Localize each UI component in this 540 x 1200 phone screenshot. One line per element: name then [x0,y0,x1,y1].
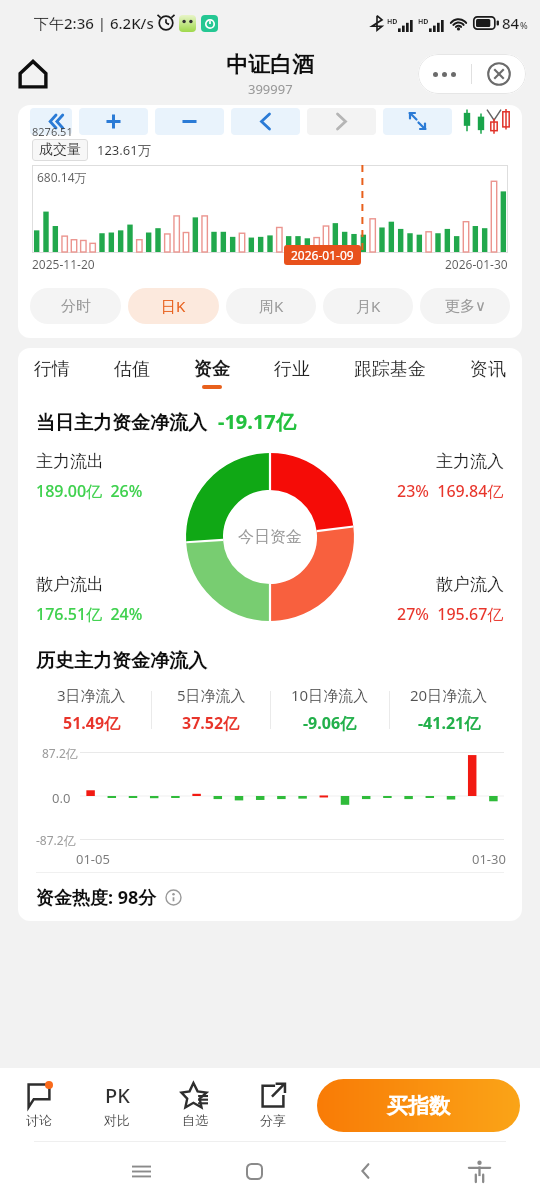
staticText: 对比 [104,1112,130,1128]
staticText: 3日净流入 [57,685,126,705]
staticText: 当日主力资金净流入 [36,411,207,435]
staticText: 399997 [248,80,293,98]
staticText: 主力流入 [436,451,504,472]
staticText: HD [418,17,429,27]
button[interactable]: Back [345,1150,387,1192]
button[interactable]: 更多∨ [420,288,510,324]
staticText: 行业 [274,358,310,381]
staticText: 讨论 [26,1112,52,1128]
staticText: 今日资金 [238,527,302,547]
staticText: 下午2:36 | 6.2K/s [34,13,154,33]
button[interactable]: Zoom in [79,108,148,135]
staticText: 84 [502,13,520,33]
staticText: 87.2亿 [42,745,78,761]
button[interactable]: Scroll left [231,108,300,135]
staticText: 日K [161,296,186,316]
button[interactable]: Chart type [460,108,512,135]
staticText: 周K [259,296,284,316]
button[interactable]: 行业 [274,348,310,398]
button[interactable]: Close [472,54,526,94]
button[interactable]: 分时 [30,288,121,324]
button[interactable]: 成交量 [32,139,88,161]
staticText: 5日净流入 [177,685,246,705]
staticText: 月K [356,296,381,316]
button[interactable]: Home [233,1150,275,1192]
button[interactable]: Recent apps [120,1150,162,1192]
staticText: PK [105,1082,130,1108]
staticText: 成交量 [39,141,81,159]
button[interactable]: 5日净流入 [152,685,270,734]
button[interactable]: 跟踪基金 [354,348,426,398]
staticText: 中证白酒 [226,51,314,79]
staticText: 主力流出 [36,451,104,472]
button[interactable]: 讨论 [0,1068,78,1142]
button[interactable]: 月K [323,288,413,324]
button[interactable]: 买指数 [317,1079,520,1132]
button[interactable]: More options [418,54,471,94]
button[interactable]: 自选 [156,1068,234,1142]
staticText: 资金 [194,358,230,381]
button[interactable]: 资金 [194,348,230,398]
button[interactable]: Zoom out [155,108,224,135]
staticText: 01-05 [76,850,110,868]
staticText: 资金热度: 98分 [36,885,157,910]
staticText: 2025-11-20 [32,256,95,272]
staticText: 8276.51 [32,124,73,139]
staticText: % [520,19,528,31]
button[interactable]: Previous page [30,108,72,135]
staticText: 51.49亿 [63,712,121,734]
button[interactable]: 资讯 [470,348,506,398]
staticText: 分时 [61,297,91,316]
button[interactable]: 分享 [234,1068,312,1142]
button[interactable]: 10日净流入 [271,685,389,734]
staticText: 分享 [260,1112,286,1128]
staticText: 自选 [182,1112,208,1128]
staticText: -41.21亿 [418,712,481,734]
staticText: 行情 [34,358,70,381]
staticText: -19.17亿 [218,408,296,435]
button[interactable]: 行情 [34,348,70,398]
staticText: 散户流入 [436,574,504,595]
button[interactable]: 估值 [114,348,150,398]
staticText: -87.2亿 [36,832,76,848]
staticText: 20日净流入 [410,685,488,705]
staticText: 37.52亿 [182,712,240,734]
staticText: HD [387,17,398,27]
staticText: 买指数 [387,1093,450,1119]
button[interactable]: 日K [128,288,219,324]
staticText: 23% 169.84亿 [397,480,504,502]
staticText: 10日净流入 [291,685,369,705]
staticText: 0.0 [52,789,71,807]
staticText: 散户流出 [36,574,104,595]
staticText: 27% 195.67亿 [397,603,504,625]
staticText: 2026-01-09 [291,247,354,263]
staticText: 01-30 [472,850,506,868]
button[interactable]: 周K [226,288,316,324]
button[interactable]: Home [10,51,56,97]
button[interactable]: PK [78,1068,156,1142]
staticText: 更多∨ [445,297,486,316]
button[interactable]: Accessibility [458,1150,500,1192]
staticText: -9.06亿 [303,712,357,734]
staticText: 跟踪基金 [354,358,426,381]
staticText: 历史主力资金净流入 [36,649,207,673]
button[interactable]: Fullscreen [383,108,452,135]
button[interactable]: 资金热度: 98分 [18,873,522,921]
button[interactable]: Scroll right [307,108,376,135]
staticText: 189.00亿 26% [36,480,143,502]
staticText: 资讯 [470,358,506,381]
staticText: 2026-01-30 [445,256,508,272]
button[interactable]: 3日净流入 [32,685,151,734]
button[interactable]: 20日净流入 [390,685,508,734]
staticText: 估值 [114,358,150,381]
staticText: 123.61万 [97,141,151,159]
staticText: 176.51亿 24% [36,603,143,625]
staticText: 680.14万 [37,169,87,185]
